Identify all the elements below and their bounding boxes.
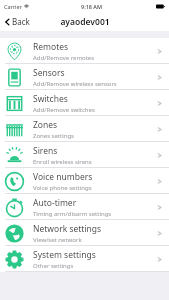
staticText: Zones settings — [33, 132, 74, 140]
button[interactable]: Network settings — [0, 220, 169, 246]
staticText: Auto-timer — [33, 197, 77, 209]
staticText: Add/Remove wireless sensors — [33, 80, 117, 88]
button[interactable]: Zones — [0, 116, 169, 142]
button[interactable]: Sensors — [0, 64, 169, 90]
button[interactable]: Sirens — [0, 142, 169, 168]
staticText: Add/Remove switches — [33, 106, 95, 114]
staticText: Other settings — [33, 262, 74, 270]
staticText: System settings — [33, 249, 96, 261]
staticText: Sensors — [33, 67, 65, 79]
staticText: Voice numbers — [33, 171, 93, 183]
staticText: Carrier — [4, 3, 22, 10]
staticText: ayaodev001 — [60, 16, 110, 28]
staticText: View/set network — [33, 236, 82, 244]
button[interactable]: Voice numbers — [0, 168, 169, 194]
staticText: Enroll wireless sirens — [33, 158, 92, 166]
button[interactable]: Remotes — [0, 38, 169, 64]
staticText: Timing arm/disarm settings — [33, 210, 112, 218]
staticText: Network settings — [33, 223, 102, 235]
staticText: Sirens — [33, 145, 58, 157]
button[interactable]: Auto-timer — [0, 194, 169, 220]
staticText: Back — [12, 16, 30, 27]
staticText: 9:18 AM — [81, 3, 103, 10]
button[interactable]: System settings — [0, 246, 169, 272]
button[interactable]: Switches — [0, 90, 169, 116]
staticText: Add/Remove remotes — [33, 54, 95, 62]
staticText: Remotes — [33, 41, 69, 53]
staticText: Zones — [33, 119, 58, 131]
staticText: Voice phone settings — [33, 184, 92, 192]
button[interactable]: Back — [3, 14, 32, 29]
staticText: Switches — [33, 93, 68, 105]
